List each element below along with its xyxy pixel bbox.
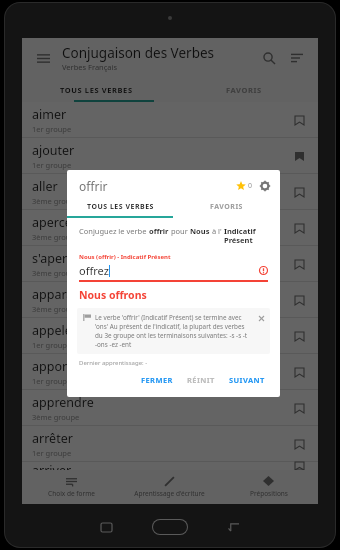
- button[interactable]: apprendre: [22, 390, 318, 425]
- staticText: Nous offrons: [79, 288, 147, 302]
- staticText: Conjuguez le verbe: [79, 226, 149, 236]
- button[interactable]: apporter: [22, 354, 318, 389]
- button[interactable]: Bookmark aller: [290, 183, 308, 201]
- button[interactable]: TOUS LES VERBES: [22, 78, 170, 102]
- staticText: Conjugaison des Verbes: [62, 44, 215, 62]
- button[interactable]: ajouter: [22, 138, 318, 173]
- staticText: 3ème groupe: [32, 412, 80, 422]
- staticText: SUIVANT: [229, 375, 265, 385]
- button[interactable]: FAVORIS: [173, 198, 280, 216]
- button[interactable]: FAVORIS: [170, 78, 318, 102]
- staticText: Indicatif Présent: [224, 226, 268, 246]
- staticText: appeler: [32, 322, 77, 339]
- button[interactable]: Bookmark ajouter: [290, 147, 308, 165]
- staticText: TOUS LES VERBES: [87, 202, 154, 212]
- button[interactable]: s'apercevoir: [22, 246, 318, 281]
- button[interactable]: Bookmark apercevoir: [290, 219, 308, 237]
- button[interactable]: Search: [258, 47, 280, 69]
- button[interactable]: Bookmark appeler: [290, 327, 308, 345]
- staticText: apparaître: [32, 286, 94, 303]
- button[interactable]: appeler: [22, 318, 318, 353]
- button[interactable]: offrez: [79, 263, 268, 278]
- button[interactable]: FERMER: [134, 371, 180, 389]
- staticText: Verbes Français: [62, 62, 118, 72]
- button[interactable]: Prépositions: [219, 470, 318, 504]
- staticText: s'apercevoir: [32, 250, 103, 267]
- button[interactable]: Aprentissage d'écriture: [120, 470, 219, 504]
- staticText: 1er groupe: [32, 340, 72, 350]
- button[interactable]: Bookmark apporter: [290, 363, 308, 381]
- staticText: 1er groupe: [32, 124, 72, 134]
- button[interactable]: Choix de forme: [22, 470, 120, 504]
- staticText: arrêter: [32, 430, 73, 447]
- staticText: Le verbe 'offrir' (Indicatif Présent) se…: [95, 313, 253, 349]
- staticText: 3ème groupe: [32, 304, 80, 314]
- staticText: offrir: [149, 226, 169, 236]
- button[interactable]: Bookmark apprendre: [290, 399, 308, 417]
- button[interactable]: Home: [152, 519, 188, 535]
- staticText: 1er groupe: [32, 376, 72, 386]
- staticText: 3ème groupe: [32, 196, 80, 206]
- staticText: offrir: [79, 178, 234, 194]
- staticText: RÉINIT: [187, 375, 215, 385]
- button[interactable]: Bookmark s'apercevoir: [290, 255, 308, 273]
- staticText: 3ème groupe: [32, 232, 80, 242]
- button[interactable]: Recents: [101, 523, 112, 532]
- button[interactable]: Close hint: [256, 313, 266, 323]
- button[interactable]: arriver: [22, 462, 318, 470]
- staticText: Choix de forme: [48, 489, 95, 498]
- staticText: apercevoir: [32, 214, 94, 231]
- staticText: FERMER: [141, 375, 173, 385]
- staticText: offrez: [79, 263, 109, 278]
- staticText: FAVORIS: [210, 202, 243, 212]
- button[interactable]: aller: [22, 174, 318, 209]
- staticText: arriver: [32, 462, 72, 470]
- staticText: Prépositions: [250, 489, 288, 498]
- staticText: 3ème groupe: [32, 268, 80, 278]
- staticText: Nous (offrir) - Indicatif Présent: [79, 253, 171, 261]
- button[interactable]: Bookmark arriver: [290, 462, 308, 470]
- staticText: Dernier apprentissage: -: [79, 359, 148, 367]
- staticText: 1er groupe: [32, 160, 72, 170]
- button[interactable]: RÉINIT: [180, 371, 222, 389]
- staticText: aller: [32, 178, 58, 195]
- button[interactable]: apparaître: [22, 282, 318, 317]
- staticText: Aprentissage d'écriture: [134, 489, 205, 498]
- staticText: à l': [210, 226, 224, 236]
- staticText: pour: [169, 226, 190, 236]
- button[interactable]: Bookmark apparaître: [290, 291, 308, 309]
- staticText: 0: [248, 181, 253, 191]
- staticText: aimer: [32, 106, 67, 123]
- button[interactable]: Bookmark aimer: [290, 111, 308, 129]
- button[interactable]: apercevoir: [22, 210, 318, 245]
- staticText: TOUS LES VERBES: [60, 85, 133, 95]
- button[interactable]: TOUS LES VERBES: [67, 198, 173, 216]
- button[interactable]: Back: [228, 523, 239, 532]
- button[interactable]: Settings: [258, 179, 272, 193]
- staticText: Nous: [190, 226, 210, 236]
- staticText: FAVORIS: [226, 85, 262, 95]
- button[interactable]: Menu: [32, 47, 54, 69]
- button[interactable]: arrêter: [22, 426, 318, 461]
- staticText: apporter: [32, 358, 84, 375]
- button[interactable]: Bookmark arrêter: [290, 435, 308, 453]
- staticText: 1er groupe: [32, 448, 72, 458]
- staticText: ajouter: [32, 142, 75, 159]
- button[interactable]: aimer: [22, 102, 318, 137]
- staticText: apprendre: [32, 394, 94, 411]
- button[interactable]: Favorite: [234, 179, 248, 193]
- button[interactable]: Sort: [286, 47, 308, 69]
- button[interactable]: SUIVANT: [222, 371, 272, 389]
